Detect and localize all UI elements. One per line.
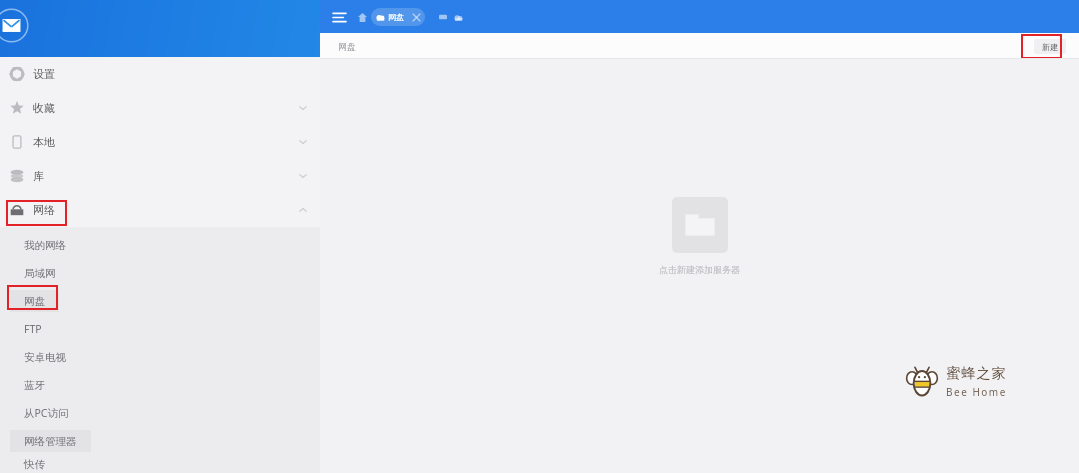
button[interactable]: Tabs [435,9,451,25]
staticText: FTP [24,322,42,336]
button[interactable]: Cloud [450,9,466,25]
staticText: 安卓电视 [24,351,66,364]
staticText: 设置 [33,67,55,81]
staticText: 库 [33,169,44,183]
button[interactable]: 安卓电视 [0,343,320,371]
button[interactable]: 网络 [0,193,320,227]
staticText: 网络 [33,203,55,217]
staticText: 我的网络 [24,239,66,252]
staticText: 网盘 [388,12,404,22]
staticText: 网盘 [338,41,356,52]
button[interactable]: FTP [0,315,320,343]
button[interactable]: 网络管理器 [0,427,320,455]
staticText: 新建 [1042,42,1058,52]
button[interactable]: 网盘 [0,287,320,315]
button[interactable]: 从PC访问 [0,399,320,427]
button[interactable]: 快传 [0,455,320,473]
button[interactable]: Messages [0,8,29,43]
staticText: 本地 [33,135,55,149]
staticText: 蜜蜂之家 [946,365,1006,383]
staticText: 从PC访问 [24,406,69,420]
staticText: 网络管理器 [24,435,77,448]
staticText: 点击新建添加服务器 [659,264,740,275]
button[interactable]: 局域网 [0,259,320,287]
button[interactable]: Home [353,8,371,26]
button[interactable]: 库 [0,159,320,193]
staticText: 蓝牙 [24,379,45,392]
button[interactable]: 本地 [0,125,320,159]
staticText: Bee Home [946,385,1007,399]
button[interactable]: 网盘 [371,8,425,26]
staticText: 快传 [24,458,45,471]
button[interactable]: 新建 [1034,39,1066,54]
button[interactable]: 我的网络 [0,231,320,259]
staticText: 网盘 [24,295,45,308]
button[interactable]: 设置 [0,57,320,91]
button[interactable]: 收藏 [0,91,320,125]
button[interactable]: Menu [328,6,350,28]
staticText: 局域网 [24,267,56,280]
button[interactable]: 蓝牙 [0,371,320,399]
staticText: 收藏 [33,101,55,115]
